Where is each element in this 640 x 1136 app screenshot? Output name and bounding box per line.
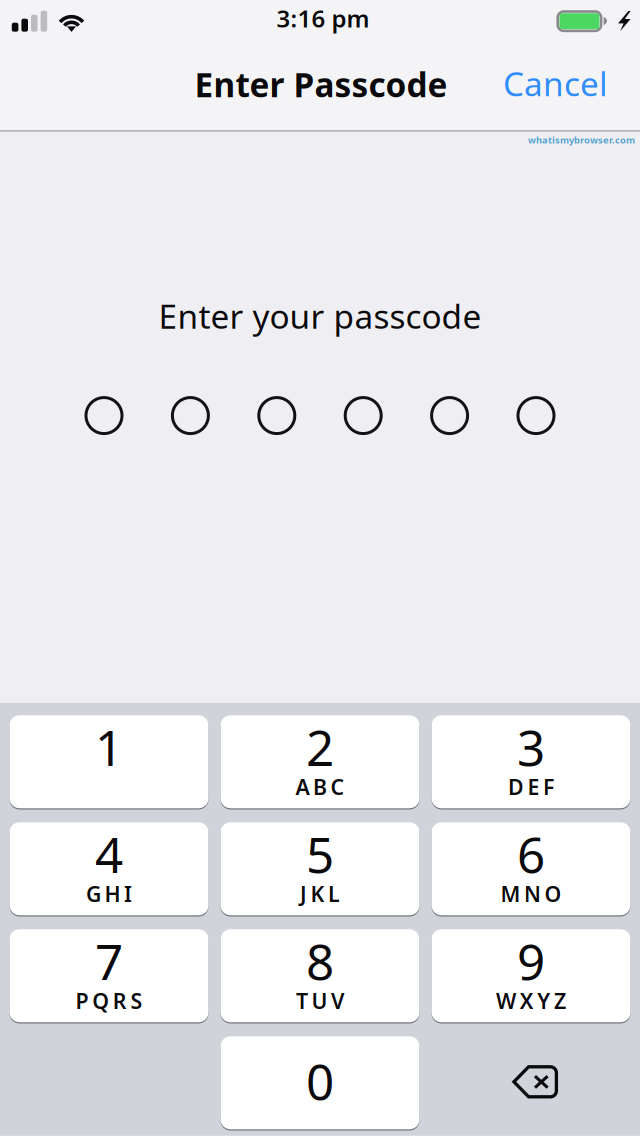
staticText: J — [300, 880, 307, 908]
button[interactable]: 1 — [9, 715, 208, 808]
staticText: 1 — [95, 714, 123, 779]
staticText: 6 — [517, 821, 545, 886]
staticText: S — [130, 987, 142, 1015]
staticText: G — [86, 880, 101, 908]
staticText: 8 — [306, 928, 334, 993]
button[interactable]: 0 — [220, 1036, 419, 1129]
button[interactable]: 8 — [220, 929, 419, 1022]
staticText: Z — [554, 987, 566, 1015]
staticText: M — [500, 880, 520, 908]
staticText: X — [520, 987, 534, 1015]
staticText: P — [76, 987, 89, 1015]
staticText: 7 — [95, 928, 123, 993]
button[interactable]: 5 — [220, 822, 419, 915]
button[interactable]: Delete — [431, 1036, 630, 1129]
staticText: W — [496, 987, 516, 1015]
button[interactable]: 6 — [431, 822, 630, 915]
button[interactable]: 4 — [9, 822, 208, 915]
staticText: F — [543, 773, 554, 801]
staticText: 4 — [95, 821, 123, 886]
staticText: U — [311, 987, 327, 1015]
button[interactable]: 7 — [9, 929, 208, 1022]
staticText: Y — [537, 987, 550, 1015]
staticText: R — [113, 987, 127, 1015]
staticText: E — [527, 773, 539, 801]
staticText: whatismybrowser.com — [528, 134, 635, 146]
staticText: A — [295, 773, 309, 801]
staticText: Q — [92, 987, 109, 1015]
button[interactable]: 9 — [431, 929, 630, 1022]
staticText: D — [508, 773, 524, 801]
staticText: L — [328, 880, 340, 908]
staticText: 5 — [306, 821, 334, 886]
staticText: 0 — [306, 1048, 334, 1113]
staticText: T — [296, 987, 308, 1015]
staticText: B — [313, 773, 327, 801]
staticText: O — [545, 880, 562, 908]
staticText: 9 — [517, 928, 545, 993]
staticText: H — [104, 880, 120, 908]
staticText: V — [331, 987, 344, 1015]
button[interactable]: Cancel — [487, 47, 624, 119]
button[interactable]: 3 — [431, 715, 630, 808]
staticText: Enter your passcode — [158, 294, 481, 338]
staticText: 2 — [306, 714, 334, 779]
staticText: C — [331, 773, 345, 801]
staticText: 3 — [517, 714, 545, 779]
staticText: K — [310, 880, 324, 908]
staticText: N — [524, 880, 541, 908]
button[interactable]: 2 — [220, 715, 419, 808]
staticText: Enter Passcode — [194, 62, 447, 106]
staticText: I — [124, 880, 132, 908]
staticText: Cancel — [503, 61, 608, 105]
staticText: 3:16 pm — [276, 2, 369, 34]
